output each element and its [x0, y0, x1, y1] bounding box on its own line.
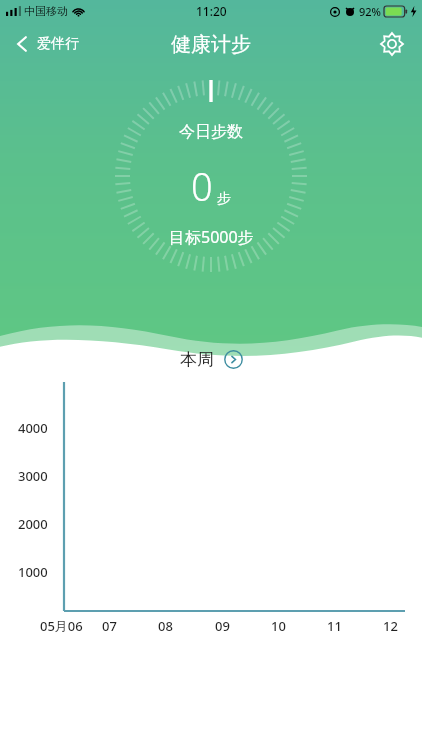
staticText: 09	[215, 617, 230, 635]
staticText: 11:20	[196, 3, 227, 19]
staticText: 中国移动	[24, 4, 68, 18]
staticText: 今日步数	[179, 122, 243, 142]
button[interactable]: Settings	[374, 26, 410, 62]
staticText: 1000	[18, 563, 48, 581]
staticText: 2000	[18, 515, 48, 533]
staticText: 0	[191, 160, 213, 212]
staticText: 10	[271, 617, 286, 635]
staticText: 07	[102, 617, 117, 635]
staticText: 健康计步	[171, 32, 251, 57]
staticText: 08	[158, 617, 173, 635]
staticText: 11	[327, 617, 342, 635]
staticText: 92%	[359, 4, 381, 19]
button[interactable]: 本周	[170, 345, 253, 374]
other: Next week	[224, 350, 243, 369]
staticText: 目标5000步	[169, 226, 254, 248]
staticText: 本周	[180, 349, 214, 370]
staticText: 4000	[18, 419, 48, 437]
button[interactable]: 爱伴行	[0, 28, 89, 60]
staticText: 爱伴行	[37, 35, 79, 53]
staticText: 12	[383, 617, 398, 635]
staticText: 3000	[18, 467, 48, 485]
staticText: 05月06	[40, 617, 83, 635]
staticText: 步	[217, 190, 231, 208]
